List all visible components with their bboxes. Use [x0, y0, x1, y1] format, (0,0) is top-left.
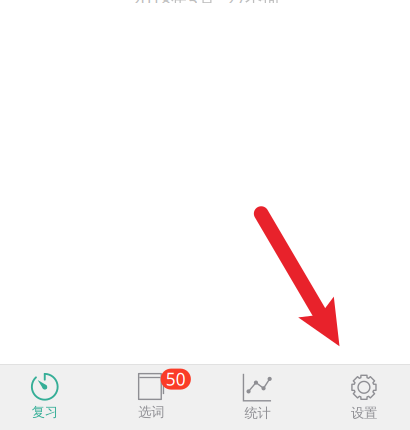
- staticText: 2018年5月 27个词: [131, 0, 279, 12]
- staticText: 50: [166, 368, 186, 391]
- button[interactable]: 复习: [0, 364, 98, 430]
- button[interactable]: 设置: [311, 364, 410, 430]
- button[interactable]: 选词: [98, 364, 204, 430]
- staticText: 选词: [138, 404, 164, 420]
- staticText: 统计: [244, 405, 270, 421]
- staticText: 复习: [32, 404, 58, 420]
- staticText: 设置: [351, 405, 377, 421]
- button[interactable]: 统计: [204, 364, 311, 430]
